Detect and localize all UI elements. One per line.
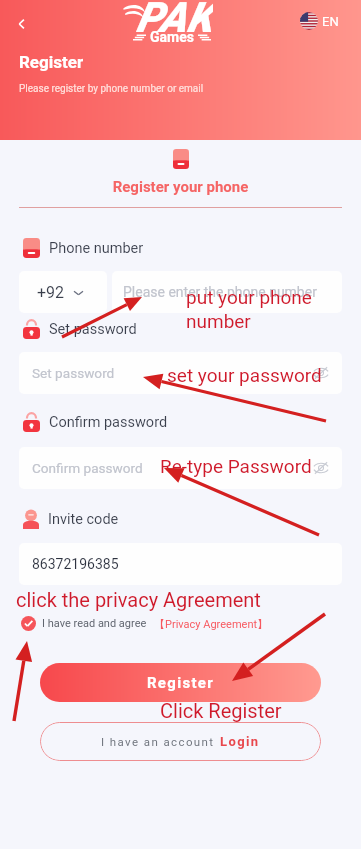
staticText: Click Register	[160, 699, 282, 722]
staticText: Register your phone	[0, 178, 361, 196]
staticText: click the privacy Agreement	[16, 588, 261, 611]
button[interactable]: Toggle password visibility	[312, 364, 330, 382]
staticText: Re-type Password	[160, 455, 312, 477]
button[interactable]: Set password	[19, 352, 342, 394]
staticText: put your phone number	[186, 286, 312, 333]
staticText: 86372196385	[32, 556, 119, 572]
staticText: Invite code	[48, 511, 119, 528]
staticText: Set password	[32, 365, 115, 381]
staticText: Set password	[49, 321, 137, 338]
staticText: 【Privacy Agreement】	[154, 617, 269, 631]
staticText: Register	[147, 674, 215, 692]
button[interactable]: Confirm password	[19, 447, 342, 489]
staticText: Phone number	[49, 240, 144, 257]
staticText: Please register by phone number or email	[19, 83, 204, 95]
staticText: Login	[220, 734, 260, 749]
button[interactable]: Please enter the phone number	[112, 271, 342, 313]
staticText: Register	[19, 52, 84, 72]
button[interactable]: I have read and agree	[21, 615, 269, 632]
button[interactable]: 86372196385	[19, 543, 342, 585]
button[interactable]: Back	[6, 8, 38, 40]
button[interactable]: EN	[300, 11, 339, 31]
staticText: Games	[150, 29, 194, 45]
staticText: Confirm password	[32, 460, 143, 476]
staticText: set your password	[167, 364, 322, 386]
staticText: Please enter the phone number	[123, 284, 317, 300]
staticText: I have an account	[101, 735, 215, 748]
button[interactable]: I have an account	[40, 722, 321, 761]
staticText: I have read and agree	[42, 617, 147, 630]
staticText: +92	[37, 283, 65, 302]
staticText: PAK	[136, 0, 213, 41]
staticText: Confirm password	[49, 414, 168, 431]
button[interactable]: +92	[19, 271, 107, 313]
staticText: EN	[322, 14, 339, 29]
button[interactable]: Register	[40, 663, 321, 702]
button[interactable]: Toggle password visibility	[312, 459, 330, 477]
